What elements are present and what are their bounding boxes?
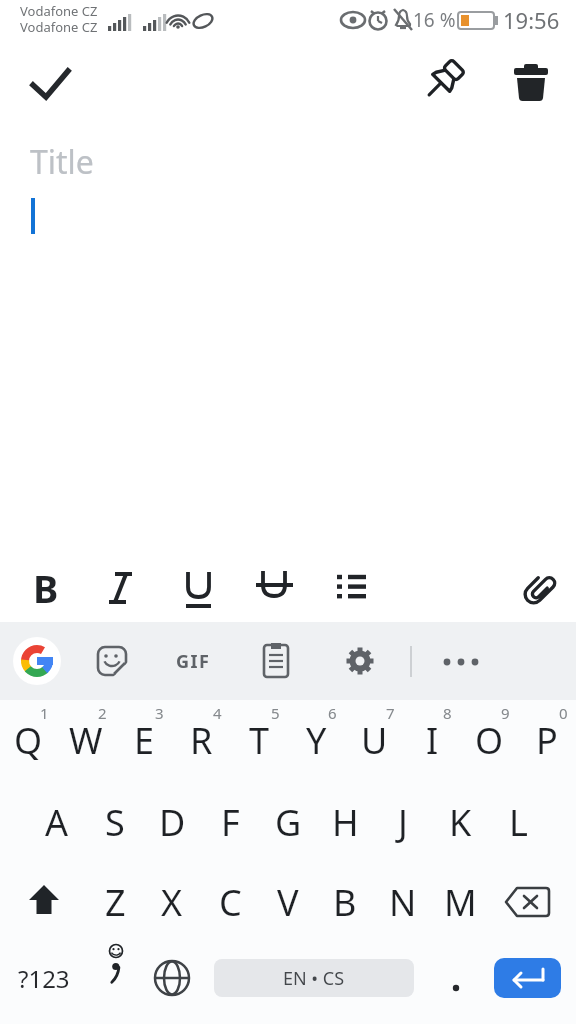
staticText: E — [134, 716, 155, 765]
button[interactable] — [346, 700, 402, 781]
staticText: U — [361, 716, 388, 765]
button[interactable] — [87, 862, 143, 943]
button[interactable] — [490, 781, 546, 862]
button[interactable] — [202, 781, 258, 862]
button[interactable] — [519, 700, 575, 781]
staticText: B — [333, 878, 357, 927]
button[interactable] — [29, 781, 85, 862]
button[interactable] — [510, 558, 570, 618]
button[interactable]: EN • CS — [214, 959, 414, 997]
staticText: W — [69, 716, 103, 765]
staticText: 5 — [271, 703, 280, 723]
staticText: R — [190, 716, 213, 765]
staticText: ?123 — [18, 962, 70, 995]
button[interactable] — [58, 700, 114, 781]
staticText: K — [449, 798, 472, 847]
button[interactable] — [144, 862, 200, 943]
staticText: 19:56 — [503, 5, 560, 35]
button[interactable] — [16, 558, 76, 618]
staticText: S — [105, 798, 125, 847]
staticText: D — [159, 798, 186, 847]
button[interactable] — [0, 943, 86, 1024]
staticText: 1 — [40, 703, 49, 723]
button[interactable] — [254, 639, 298, 683]
staticText: Y — [306, 716, 327, 765]
button[interactable] — [426, 943, 484, 1024]
button[interactable] — [506, 56, 558, 108]
button[interactable] — [375, 781, 431, 862]
button[interactable] — [168, 639, 218, 683]
staticText: Vodafone CZ — [20, 2, 98, 20]
button[interactable] — [173, 700, 229, 781]
button[interactable] — [90, 639, 134, 683]
button[interactable] — [322, 558, 382, 618]
staticText: C — [219, 878, 242, 927]
staticText: T — [249, 716, 270, 765]
button[interactable] — [144, 943, 202, 1024]
staticText: 7 — [386, 703, 395, 723]
staticText: 2 — [98, 703, 107, 723]
button[interactable] — [13, 637, 61, 685]
button[interactable] — [375, 862, 431, 943]
button[interactable] — [338, 639, 382, 683]
staticText: P — [536, 716, 558, 765]
staticText: H — [332, 798, 359, 847]
button[interactable] — [317, 781, 373, 862]
button[interactable] — [404, 700, 460, 781]
button[interactable] — [490, 862, 576, 943]
staticText: 8 — [443, 703, 452, 723]
staticText: F — [221, 798, 240, 847]
staticText: 4 — [213, 703, 222, 723]
button[interactable] — [231, 700, 287, 781]
button[interactable] — [243, 558, 303, 618]
button[interactable] — [440, 639, 484, 683]
button[interactable] — [432, 862, 488, 943]
staticText: I — [426, 716, 439, 765]
staticText: Vodafone CZ — [20, 18, 98, 36]
staticText: GIF — [176, 649, 211, 674]
button[interactable] — [20, 60, 80, 108]
staticText: O — [475, 716, 504, 765]
staticText: G — [275, 798, 302, 847]
staticText: N — [389, 878, 417, 927]
staticText: A — [45, 798, 69, 847]
button[interactable] — [461, 700, 517, 781]
staticText: X — [161, 878, 183, 927]
button[interactable] — [432, 781, 488, 862]
staticText: J — [398, 798, 408, 847]
staticText: 9 — [501, 703, 510, 723]
button[interactable] — [87, 781, 143, 862]
staticText: M — [444, 878, 477, 927]
staticText: Q — [14, 716, 43, 765]
button[interactable] — [260, 781, 316, 862]
staticText: 3 — [155, 703, 164, 723]
button[interactable] — [0, 700, 56, 781]
button[interactable] — [494, 958, 561, 998]
button[interactable] — [416, 56, 468, 108]
button[interactable] — [260, 862, 316, 943]
button[interactable] — [202, 862, 258, 943]
staticText: 0 — [559, 703, 568, 723]
button[interactable] — [116, 700, 172, 781]
staticText: Z — [105, 878, 126, 927]
staticText: V — [277, 878, 299, 927]
button[interactable] — [288, 700, 344, 781]
button[interactable] — [0, 862, 86, 943]
staticText: 16 % — [413, 7, 456, 33]
staticText: EN • CS — [283, 966, 345, 991]
staticText: L — [509, 798, 528, 847]
staticText: Title — [30, 140, 94, 184]
button[interactable] — [86, 943, 144, 1024]
button[interactable] — [317, 862, 373, 943]
button[interactable] — [91, 558, 151, 618]
staticText: 6 — [328, 703, 337, 723]
button[interactable] — [144, 781, 200, 862]
staticText: B — [33, 562, 59, 614]
button[interactable] — [166, 558, 226, 618]
